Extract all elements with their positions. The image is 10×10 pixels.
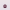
button[interactable]: Start xyxy=(3,4,7,8)
